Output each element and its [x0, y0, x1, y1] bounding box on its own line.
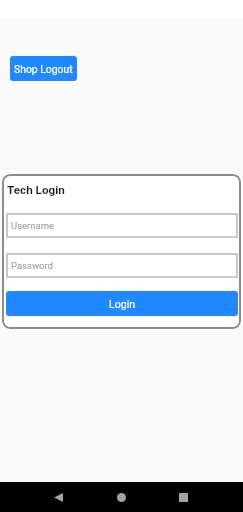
button[interactable]: Back — [43, 482, 74, 512]
staticText: Password — [11, 260, 53, 271]
button[interactable]: Shop Logout — [10, 56, 77, 81]
button[interactable]: Password — [6, 253, 238, 278]
button[interactable]: Recents — [168, 482, 199, 512]
staticText: Login — [109, 298, 136, 310]
staticText: Shop Logout — [14, 63, 73, 75]
button[interactable]: Username — [6, 213, 238, 238]
button[interactable]: Home — [106, 482, 137, 512]
button[interactable]: Login — [6, 291, 238, 316]
staticText: Username — [11, 220, 55, 231]
staticText: Tech Login — [7, 183, 65, 197]
